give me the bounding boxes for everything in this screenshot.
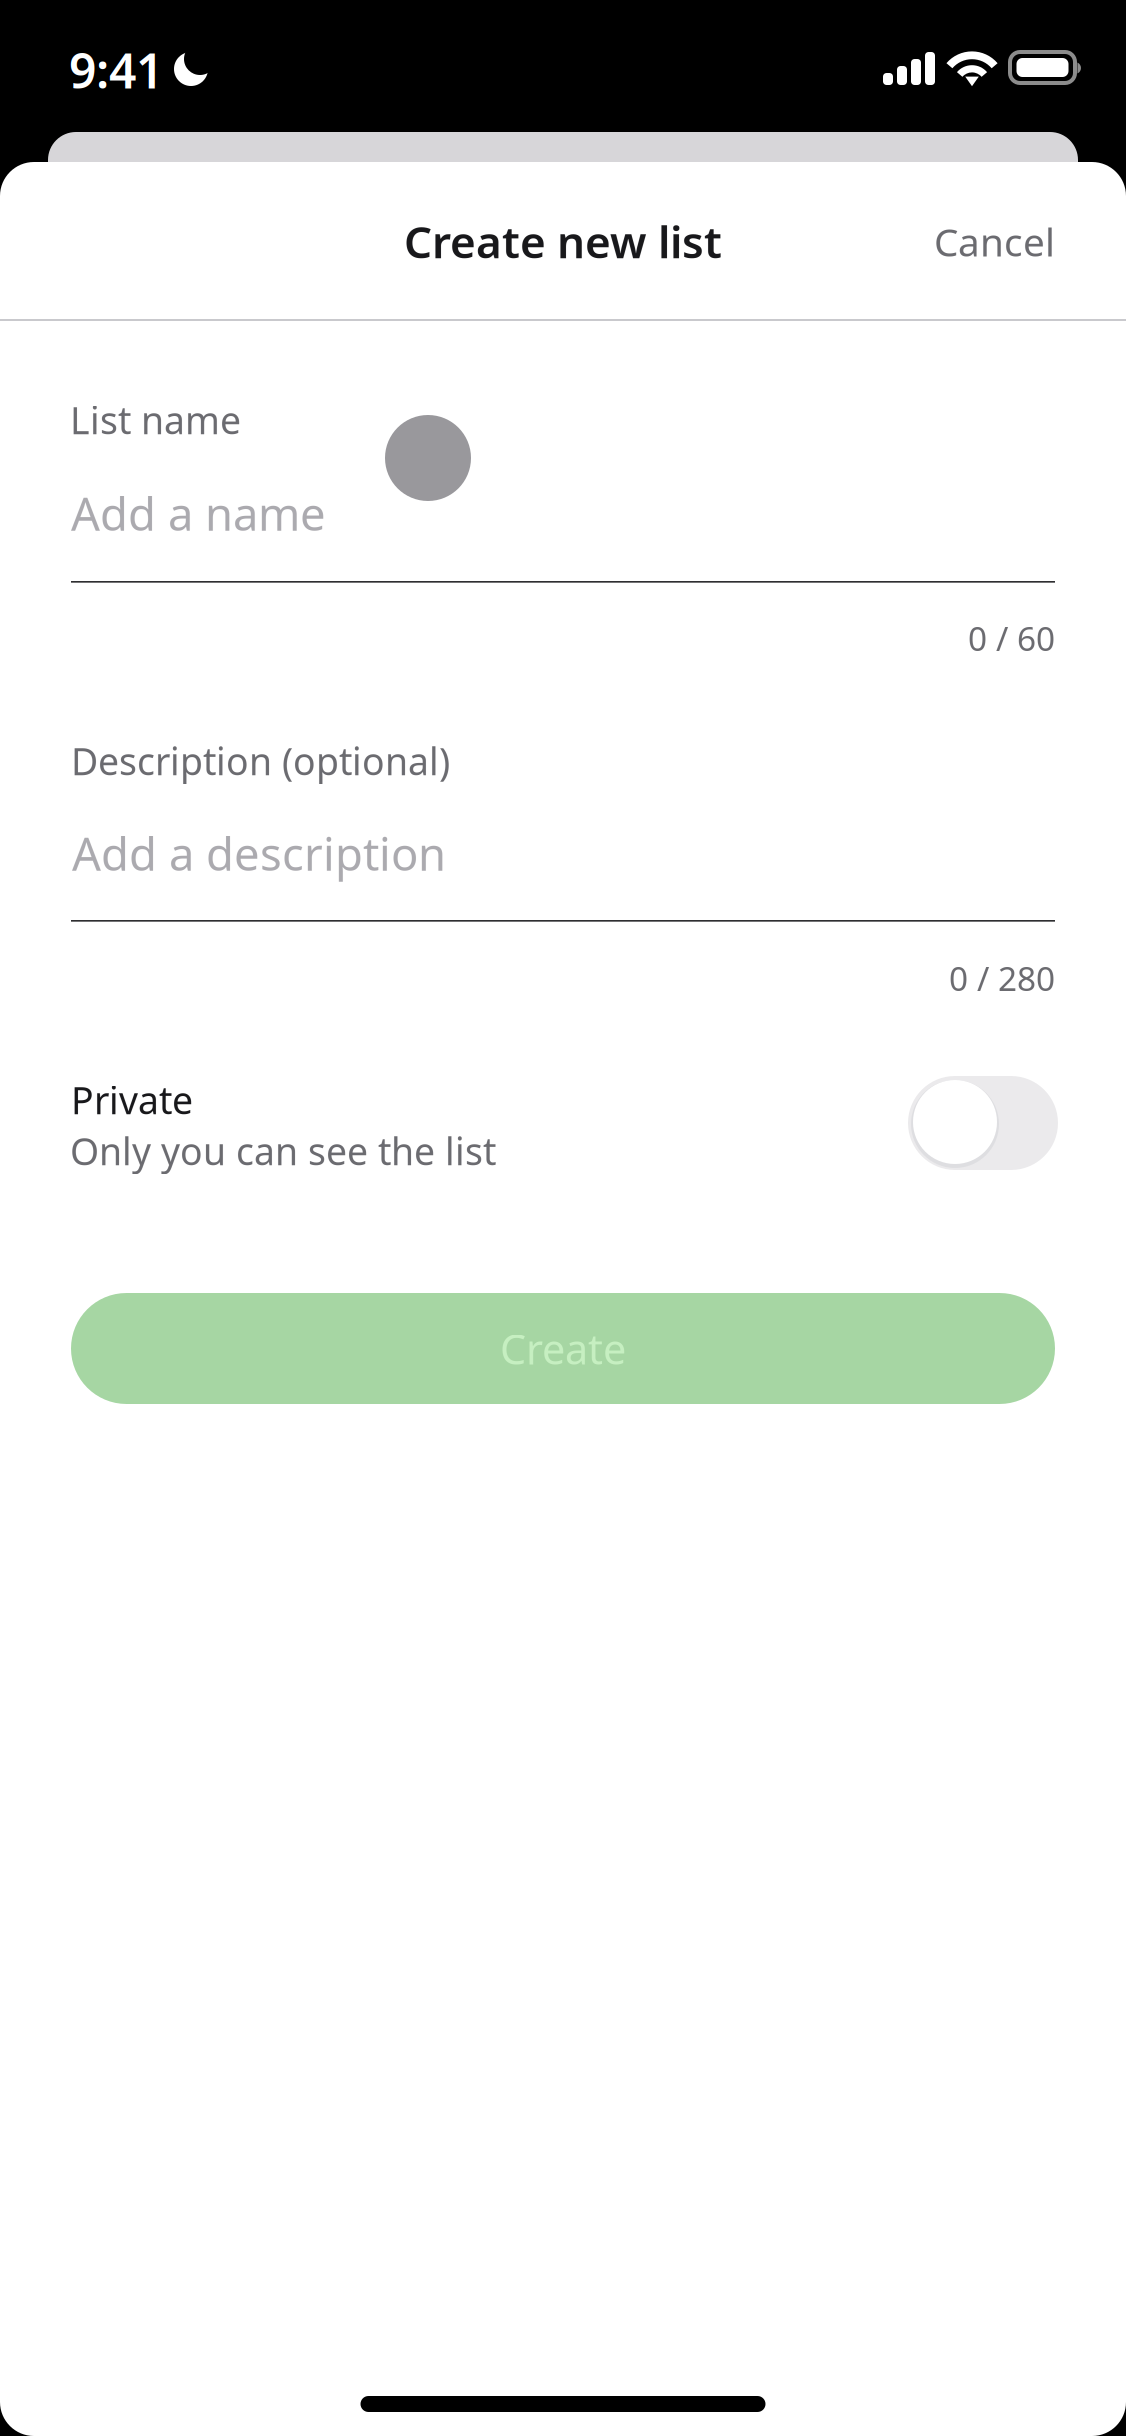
staticText: Description (optional) [71, 736, 450, 786]
button[interactable]: Private, Only you can see the list, off [71, 1075, 1055, 1195]
staticText: Create [500, 1321, 626, 1376]
staticText: Add a name [71, 483, 326, 543]
button[interactable]: Cancel [855, 191, 1055, 291]
button[interactable]: Create [71, 1293, 1055, 1404]
staticText: 9:41 [69, 38, 163, 102]
staticText: 0 / 280 [949, 956, 1055, 1000]
button[interactable]: List name, Add a name [71, 395, 1055, 585]
staticText: Cancel [934, 216, 1055, 267]
staticText: Private [71, 1075, 193, 1125]
staticText: Add a description [72, 823, 446, 883]
staticText: Only you can see the list [70, 1126, 496, 1176]
staticText: 0 / 60 [968, 616, 1055, 660]
button[interactable]: Description (optional), Add a descriptio… [71, 736, 1055, 922]
staticText: Create new list [404, 212, 722, 270]
staticText: List name [70, 395, 241, 445]
